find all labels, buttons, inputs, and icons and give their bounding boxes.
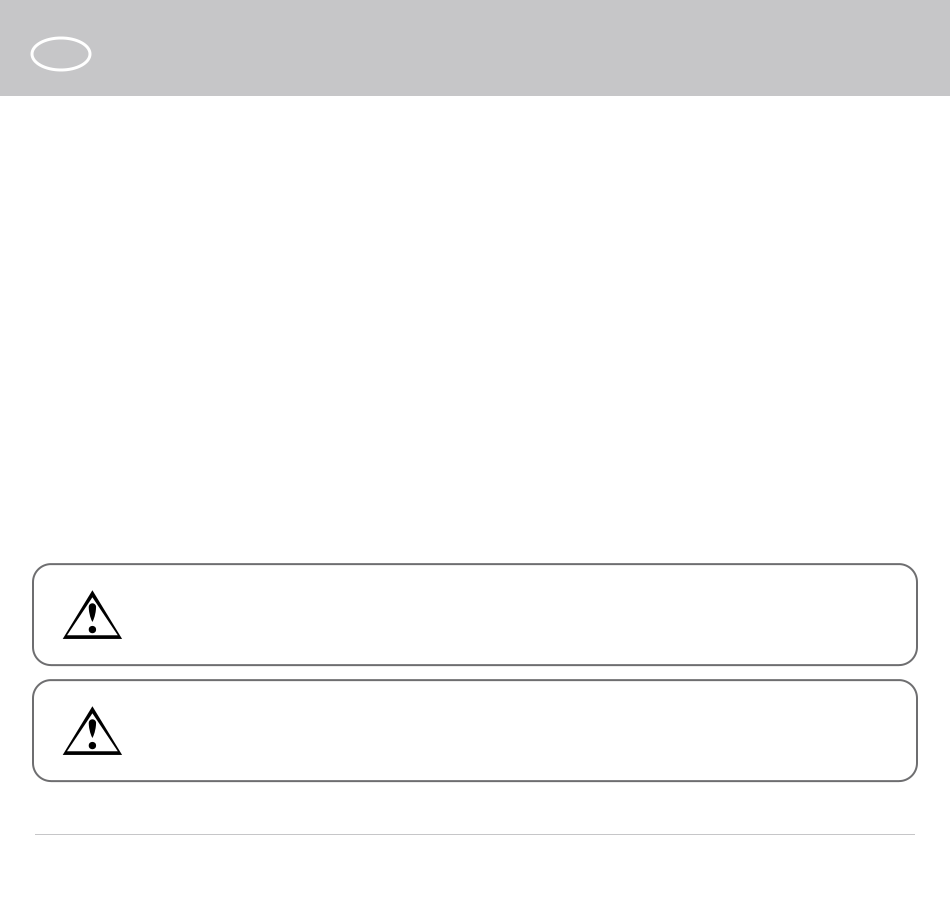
button[interactable]: Warning [33,564,917,665]
button[interactable]: Menu [32,38,90,70]
button[interactable]: Warning [33,680,917,781]
